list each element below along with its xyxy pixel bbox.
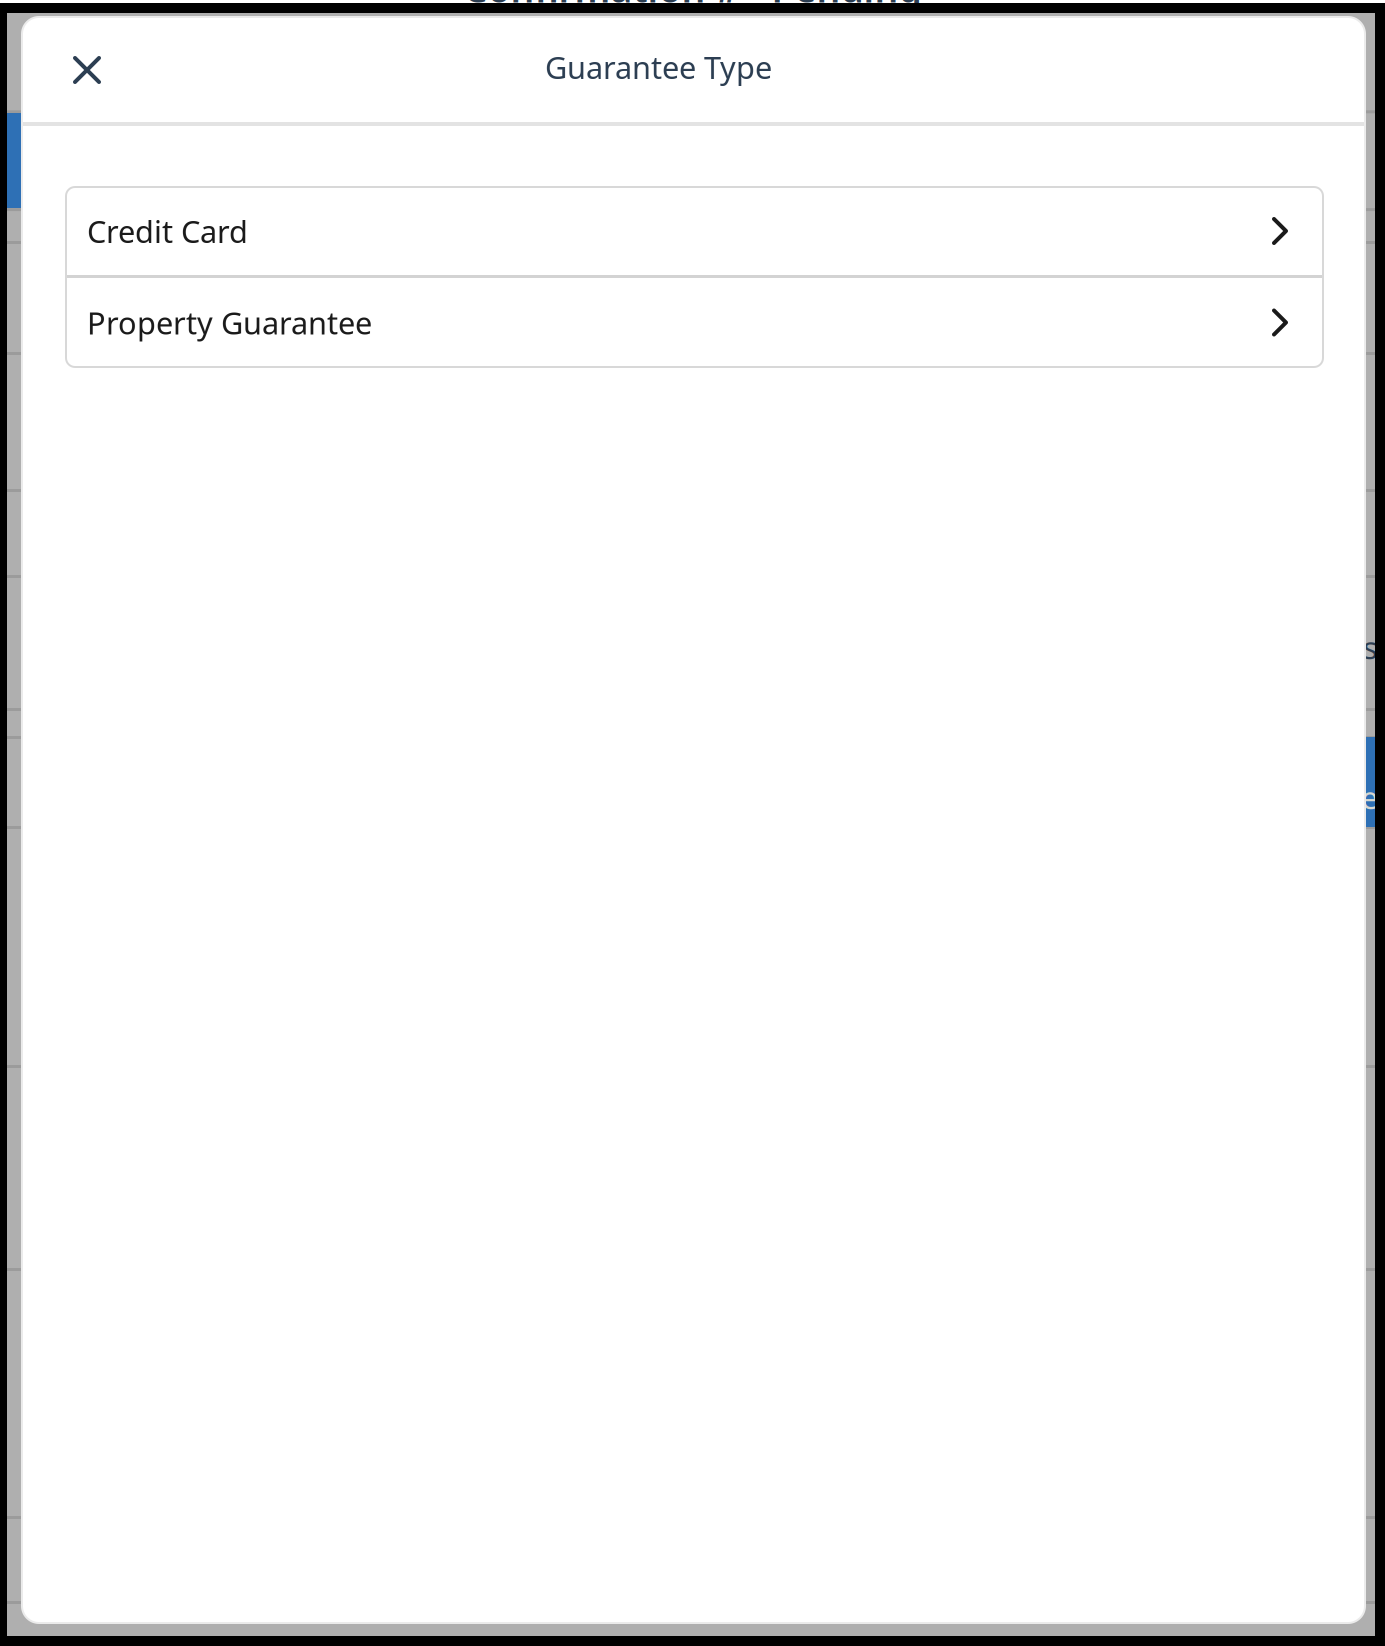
staticText: Guarantee Type	[545, 47, 772, 87]
button[interactable]: Credit Card	[66, 187, 1323, 275]
staticText: Property Guarantee	[87, 302, 372, 343]
button[interactable]: Property Guarantee	[66, 278, 1323, 367]
button[interactable]: Close	[23, 34, 123, 106]
staticText: s	[1363, 627, 1378, 668]
staticText: Confirmation # - Pending	[463, 0, 921, 13]
staticText: Credit Card	[87, 211, 248, 251]
staticText: e	[1361, 777, 1378, 818]
